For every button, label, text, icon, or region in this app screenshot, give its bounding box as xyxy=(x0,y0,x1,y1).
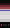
button[interactable]: Radio xyxy=(5,22,7,28)
button[interactable]: Search xyxy=(7,22,10,28)
button[interactable]: Browse xyxy=(3,22,5,28)
button[interactable]: Listen Now xyxy=(0,22,3,28)
